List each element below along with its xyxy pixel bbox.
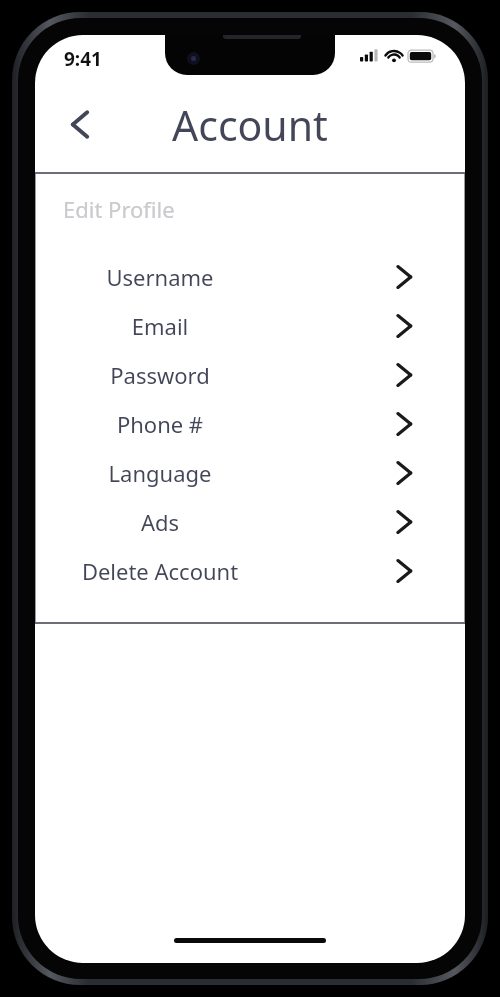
staticText: Language [37, 458, 283, 488]
staticText: Phone # [37, 409, 283, 439]
staticText: Account [172, 97, 328, 153]
button[interactable]: Back [57, 98, 103, 150]
button[interactable]: Language [35, 448, 465, 497]
button[interactable]: Email [35, 301, 465, 350]
button[interactable]: Phone # [35, 399, 465, 448]
staticText: Username [37, 262, 283, 292]
staticText: 9:41 [64, 46, 102, 72]
button[interactable]: Delete Account [35, 546, 465, 595]
staticText: Ads [37, 507, 283, 537]
button[interactable]: Username [35, 252, 465, 301]
button[interactable]: Ads [35, 497, 465, 546]
staticText: Edit Profile [63, 194, 175, 224]
staticText: Delete Account [37, 556, 283, 586]
staticText: Password [37, 360, 283, 390]
button[interactable]: Password [35, 350, 465, 399]
staticText: Email [37, 311, 283, 341]
